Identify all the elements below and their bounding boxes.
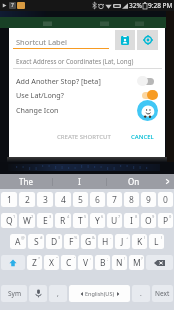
staticText: N <box>116 257 123 269</box>
staticText: Use Lat/Long? <box>16 90 137 100</box>
staticText: Change Icon <box>16 105 59 115</box>
button[interactable]: Change icon <box>137 100 158 121</box>
button[interactable]: 2 <box>19 192 35 207</box>
button[interactable]: 7 <box>107 192 122 207</box>
button[interactable]: Use Lat/Long? <box>9 88 165 102</box>
staticText: A <box>15 236 21 248</box>
button[interactable]: 8 <box>124 192 139 207</box>
staticText: 7 <box>11 2 14 9</box>
staticText: G <box>85 236 92 248</box>
button[interactable]: 1 <box>1 192 17 207</box>
staticText: 5 <box>78 194 83 206</box>
button[interactable]: N <box>112 255 127 270</box>
staticText: O <box>145 215 152 227</box>
button[interactable]: I <box>124 213 139 228</box>
staticText: 0 <box>169 214 172 219</box>
staticText: E <box>43 215 48 227</box>
button[interactable]: G <box>81 234 96 249</box>
button[interactable]: Z <box>27 255 42 270</box>
button[interactable]: Q <box>1 213 17 228</box>
staticText: I <box>130 215 133 227</box>
button[interactable]: 4 <box>55 192 71 207</box>
button[interactable]: Add Another Stop? [beta] <box>9 74 165 88</box>
button[interactable]: CREATE SHORTCUT <box>54 130 114 144</box>
button[interactable]: Use current location <box>137 30 158 50</box>
staticText: 0 <box>163 194 168 206</box>
staticText: 9 <box>152 214 155 219</box>
button[interactable]: Voice input <box>29 285 47 302</box>
staticText: Y <box>95 215 100 227</box>
button[interactable]: Sym <box>1 285 27 302</box>
staticText: CREATE SHORTCUT <box>57 133 111 141</box>
staticText: W <box>23 215 31 227</box>
staticText: 1 <box>7 194 12 206</box>
button[interactable]: J <box>115 234 130 249</box>
staticText: ( <box>144 235 146 240</box>
staticText: M <box>133 257 141 269</box>
button[interactable]: 9 <box>141 192 156 207</box>
button[interactable]: 3 <box>37 192 53 207</box>
button[interactable]: A <box>10 234 26 249</box>
button[interactable]: X <box>44 255 59 270</box>
button[interactable]: M <box>129 255 144 270</box>
staticText: Sym <box>8 289 21 298</box>
button[interactable]: CANCEL <box>128 130 157 144</box>
staticText: " <box>56 256 58 261</box>
button[interactable]: K <box>132 234 147 249</box>
staticText: 2 <box>31 214 34 219</box>
staticText: 9 <box>146 194 151 206</box>
button[interactable]: D <box>46 234 62 249</box>
button[interactable]: Delete <box>146 255 173 270</box>
button[interactable]: , <box>49 285 67 302</box>
staticText: ! <box>124 256 126 261</box>
button[interactable]: On <box>107 174 160 189</box>
staticText: 32% <box>129 1 142 10</box>
staticText: 5 <box>84 214 87 219</box>
staticText: 7 <box>112 194 117 206</box>
staticText: English(US) <box>85 290 115 297</box>
staticText: 4 <box>67 214 70 219</box>
staticText: F <box>69 236 74 248</box>
button[interactable]: S <box>28 234 44 249</box>
button[interactable]: F <box>64 234 79 249</box>
button[interactable]: More suggestions <box>160 174 174 189</box>
staticText: The <box>19 176 33 187</box>
button[interactable]: 6 <box>90 192 105 207</box>
button[interactable]: L <box>149 234 164 249</box>
button[interactable]: B <box>95 255 110 270</box>
staticText: 1 <box>13 214 16 219</box>
staticText: 7 <box>118 214 121 219</box>
button[interactable]: T <box>73 213 88 228</box>
staticText: @ <box>21 235 25 240</box>
button[interactable]: 5 <box>73 192 88 207</box>
button[interactable]: V <box>78 255 93 270</box>
button[interactable]: . <box>132 285 150 302</box>
button[interactable]: Choose contact <box>115 30 135 50</box>
button[interactable]: H <box>98 234 113 249</box>
staticText: . <box>140 289 142 298</box>
button[interactable]: Next <box>152 285 173 302</box>
button[interactable]: I <box>53 174 106 189</box>
button[interactable]: O <box>141 213 156 228</box>
button[interactable]: Change Icon <box>9 103 165 117</box>
staticText: B <box>100 257 106 269</box>
button[interactable]: English(US) <box>69 285 130 302</box>
staticText: T <box>78 215 83 227</box>
staticText: ; <box>107 256 109 261</box>
staticText: ? <box>141 256 143 261</box>
staticText: Q <box>6 215 13 227</box>
button[interactable]: Shift <box>1 255 25 270</box>
staticText: H <box>102 236 109 248</box>
button[interactable]: C <box>61 255 76 270</box>
button[interactable]: R <box>55 213 71 228</box>
staticText: : <box>90 256 92 261</box>
button[interactable]: Y <box>90 213 105 228</box>
staticText: 3 <box>49 214 52 219</box>
staticText: , <box>57 289 59 298</box>
button[interactable]: 0 <box>158 192 173 207</box>
button[interactable]: P <box>158 213 173 228</box>
button[interactable]: The <box>0 174 52 189</box>
button[interactable]: E <box>37 213 53 228</box>
button[interactable]: W <box>19 213 35 228</box>
button[interactable]: U <box>107 213 122 228</box>
